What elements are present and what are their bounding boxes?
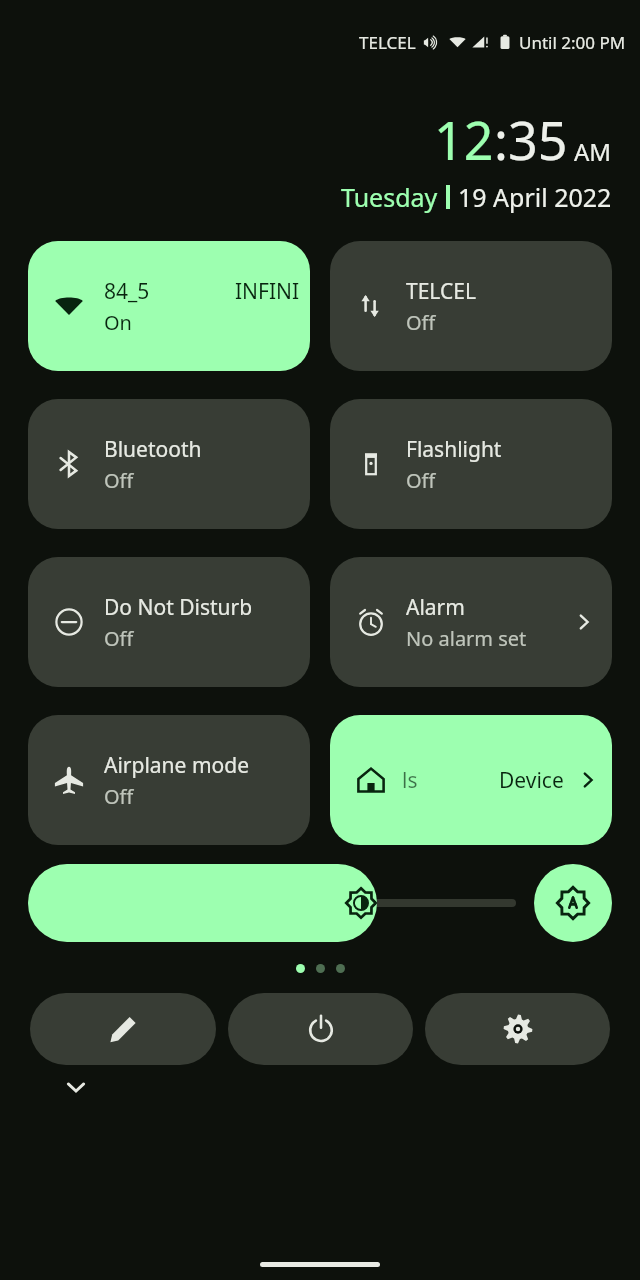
button[interactable]: ls <box>330 715 612 845</box>
staticText: Off <box>104 625 134 652</box>
staticText: TELCEL <box>359 31 416 54</box>
button[interactable]: Alarm <box>330 557 612 687</box>
staticText: Flashlight <box>406 435 502 464</box>
staticText: ls <box>402 766 418 795</box>
staticText: Off <box>104 467 134 494</box>
staticText: Device <box>499 766 564 795</box>
button[interactable]: Airplane mode <box>28 715 310 845</box>
staticText: Bluetooth <box>104 435 202 464</box>
staticText: 12 <box>434 104 494 175</box>
staticText: On <box>104 309 132 336</box>
staticText: Off <box>406 309 436 336</box>
staticText: Off <box>406 467 436 494</box>
staticText: Do Not Disturb <box>104 593 253 622</box>
button[interactable]: Brightness <box>28 864 516 942</box>
staticText: TELCEL <box>406 277 476 306</box>
button[interactable]: Settings <box>425 993 610 1065</box>
staticText: Airplane mode <box>104 751 250 780</box>
button[interactable]: Collapse <box>62 1073 90 1101</box>
staticText: Until 2:00 PM <box>519 31 626 54</box>
staticText: No alarm set <box>406 625 527 652</box>
button[interactable]: 84_5 <box>28 241 310 371</box>
staticText: INFINI <box>235 277 300 306</box>
button[interactable]: Do Not Disturb <box>28 557 310 687</box>
staticText: Tuesday <box>341 180 438 214</box>
button[interactable]: Bluetooth <box>28 399 310 529</box>
button[interactable]: Power <box>228 993 413 1065</box>
button[interactable]: Flashlight <box>330 399 612 529</box>
button[interactable]: Edit <box>30 993 216 1065</box>
staticText: AM <box>574 135 612 168</box>
staticText: 84_5 <box>104 277 150 306</box>
staticText: Alarm <box>406 593 465 622</box>
staticText: 19 April 2022 <box>458 180 612 214</box>
button[interactable]: TELCEL <box>330 241 612 371</box>
staticText: :35 <box>494 104 568 175</box>
staticText: Off <box>104 783 134 810</box>
button[interactable]: Auto brightness <box>534 864 612 942</box>
